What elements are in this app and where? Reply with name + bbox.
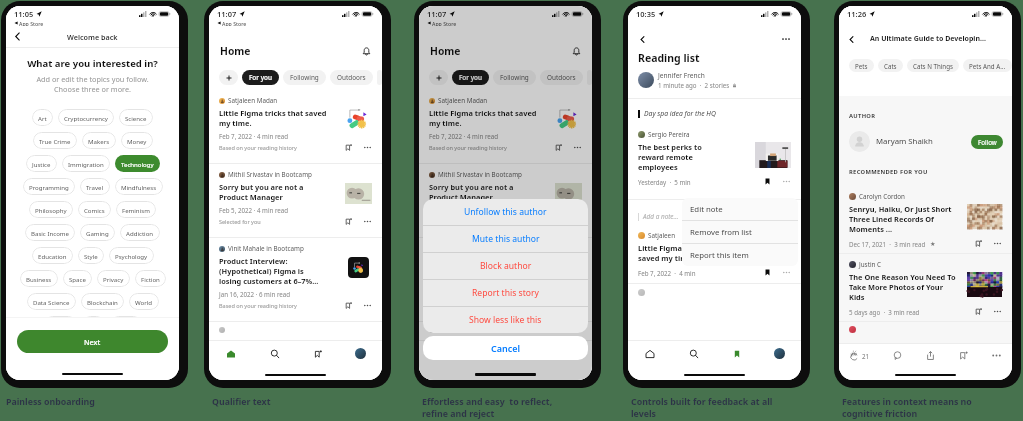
button[interactable]: Profile bbox=[758, 341, 801, 366]
button[interactable]: Save bbox=[344, 143, 353, 152]
button[interactable]: Philosophy bbox=[29, 201, 73, 218]
button[interactable]: Home bbox=[628, 341, 672, 366]
button[interactable]: More options bbox=[573, 143, 582, 152]
button[interactable]: Space bbox=[63, 270, 92, 287]
button[interactable]: Mindfulness bbox=[115, 178, 163, 195]
button[interactable]: Data Science bbox=[27, 293, 76, 310]
button[interactable]: Outdoors bbox=[330, 70, 373, 85]
button[interactable]: Design bbox=[110, 316, 142, 333]
button[interactable]: Notifications bbox=[571, 46, 582, 57]
button[interactable]: Cryptocurrency bbox=[58, 109, 114, 126]
button[interactable]: Block author bbox=[423, 253, 588, 279]
button[interactable]: Add topic bbox=[429, 70, 448, 85]
button[interactable]: Psychology bbox=[109, 247, 154, 264]
button[interactable]: Show less like this bbox=[423, 307, 588, 333]
button[interactable]: Mithil Srivastav in Bootcamp bbox=[209, 164, 382, 237]
button[interactable]: Justice bbox=[26, 155, 57, 172]
button[interactable]: Bookmarks bbox=[296, 341, 339, 366]
button[interactable]: Cats N Things bbox=[907, 59, 959, 72]
button[interactable]: Money bbox=[121, 132, 153, 149]
button[interactable]: Edit note bbox=[682, 198, 798, 220]
button[interactable]: More options bbox=[573, 217, 582, 226]
button[interactable]: Sergio Pereira bbox=[628, 130, 801, 186]
button[interactable]: Share bbox=[925, 350, 936, 361]
button[interactable]: Save bbox=[554, 143, 563, 152]
button[interactable]: Basic Income bbox=[25, 224, 75, 241]
button[interactable]: Saved bbox=[763, 268, 772, 277]
button[interactable]: Search bbox=[463, 341, 506, 366]
button[interactable]: More options bbox=[363, 143, 372, 152]
button[interactable]: Save bbox=[344, 217, 353, 226]
button[interactable]: More options bbox=[993, 239, 1002, 248]
button[interactable]: Carolyn Cordon bbox=[839, 186, 1012, 253]
button[interactable]: Programming bbox=[23, 178, 75, 195]
button[interactable]: Science bbox=[119, 109, 153, 126]
button[interactable]: Art bbox=[32, 109, 53, 126]
button[interactable]: Save bbox=[554, 217, 563, 226]
button[interactable]: More options bbox=[363, 217, 372, 226]
button[interactable]: Justin C bbox=[839, 254, 1012, 321]
button[interactable]: Comics bbox=[78, 201, 111, 218]
button[interactable]: Bookmarks bbox=[506, 341, 549, 366]
button[interactable]: Culture bbox=[44, 316, 77, 333]
button[interactable]: Search bbox=[672, 341, 715, 366]
button[interactable]: More options bbox=[363, 301, 372, 310]
button[interactable]: 21 bbox=[849, 350, 870, 361]
button[interactable]: Education bbox=[32, 247, 73, 264]
button[interactable]: Home bbox=[209, 341, 253, 366]
button[interactable]: World bbox=[129, 293, 159, 310]
button[interactable]: More options bbox=[782, 177, 791, 186]
button[interactable]: Saved bbox=[763, 177, 772, 186]
button[interactable]: Report this item bbox=[682, 244, 798, 266]
button[interactable]: Following bbox=[283, 70, 326, 85]
button[interactable]: Profile bbox=[339, 341, 382, 366]
button[interactable]: Report this story bbox=[423, 280, 588, 306]
button[interactable]: Following bbox=[493, 70, 536, 85]
button[interactable]: Add topic bbox=[219, 70, 238, 85]
button[interactable]: Back bbox=[638, 35, 647, 44]
button[interactable]: Pets And Animals bbox=[963, 59, 1012, 72]
button[interactable]: Profile bbox=[549, 341, 592, 366]
button[interactable]: Back bbox=[10, 29, 25, 44]
button[interactable]: Remove from list bbox=[682, 221, 798, 243]
button[interactable]: Back bbox=[847, 35, 856, 44]
button[interactable]: Mithil Srivastav in Bootcamp bbox=[419, 164, 592, 237]
button[interactable]: Save bbox=[958, 350, 969, 361]
button[interactable]: Travel bbox=[80, 178, 110, 195]
button[interactable]: More options bbox=[573, 301, 582, 310]
button[interactable]: Mute this author bbox=[423, 226, 588, 252]
button[interactable]: Cats bbox=[878, 59, 903, 72]
button[interactable]: Gaming bbox=[80, 224, 115, 241]
button[interactable]: Pets bbox=[849, 59, 874, 72]
button[interactable]: Vinit Mahale in Bootcamp bbox=[419, 238, 592, 321]
button[interactable]: Home bbox=[419, 341, 463, 366]
button[interactable]: Comment bbox=[892, 350, 903, 361]
button[interactable]: Immigration bbox=[62, 155, 110, 172]
button[interactable]: Notifications bbox=[361, 46, 372, 57]
button[interactable]: Feminism bbox=[116, 201, 156, 218]
button[interactable]: Save bbox=[344, 301, 353, 310]
button[interactable]: Save bbox=[974, 307, 983, 316]
button[interactable]: True Crime bbox=[33, 132, 77, 149]
button[interactable]: Blockchain bbox=[81, 293, 124, 310]
button[interactable]: More options bbox=[991, 350, 1002, 361]
button[interactable]: Style bbox=[78, 247, 104, 264]
button[interactable]: Save bbox=[974, 239, 983, 248]
button[interactable]: Life bbox=[82, 316, 105, 333]
button[interactable]: Unfollow this author bbox=[423, 199, 588, 225]
button[interactable]: Privacy bbox=[97, 270, 130, 287]
button[interactable]: Fiction bbox=[135, 270, 166, 287]
button[interactable]: Bookmarks bbox=[715, 341, 758, 366]
button[interactable]: Save bbox=[554, 301, 563, 310]
button[interactable]: Technology bbox=[115, 155, 160, 172]
button[interactable]: Makers bbox=[82, 132, 116, 149]
button[interactable]: Satjaleen Madan bbox=[209, 90, 382, 163]
button[interactable]: Satjaleen bbox=[628, 231, 801, 277]
button[interactable]: Addiction bbox=[120, 224, 160, 241]
button[interactable]: Follow bbox=[971, 135, 1003, 149]
button[interactable]: Business bbox=[20, 270, 58, 287]
button[interactable]: Search bbox=[253, 341, 296, 366]
button[interactable]: More options bbox=[993, 307, 1002, 316]
